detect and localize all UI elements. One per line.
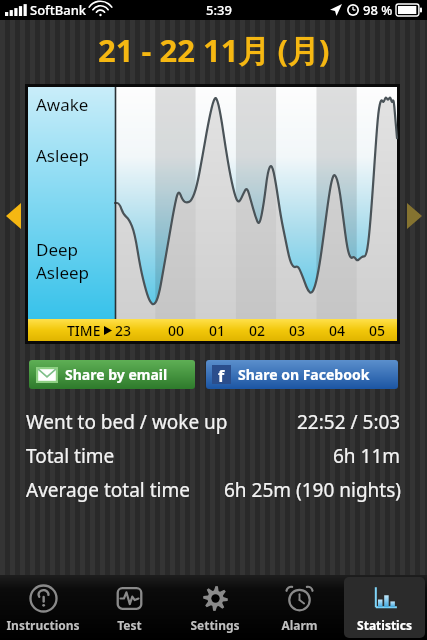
staticText: SoftBank — [30, 1, 87, 19]
staticText: 98 % — [363, 1, 393, 19]
staticText: f — [218, 365, 225, 384]
staticText: 6h 11m — [333, 443, 401, 469]
staticText: Test — [117, 617, 142, 633]
staticText: Instructions — [6, 617, 80, 633]
staticText: Average total time — [26, 477, 190, 503]
staticText: 6h 25m (190 nights) — [224, 477, 401, 503]
staticText: TIME — [67, 321, 101, 340]
staticText: 21 - 22 11月 (月) — [98, 29, 330, 71]
staticText: Awake — [36, 93, 89, 116]
staticText: 22:52 / 5:03 — [297, 409, 401, 435]
button[interactable]: Alarm — [259, 577, 340, 638]
staticText: Went to bed / woke up — [26, 409, 228, 435]
button[interactable]: Test — [88, 577, 170, 638]
staticText: Total time — [26, 443, 115, 469]
staticText: Alarm — [281, 617, 318, 633]
button[interactable]: Instructions — [2, 577, 84, 638]
staticText: 01 — [209, 321, 226, 340]
button[interactable]: Next night — [401, 80, 427, 352]
staticText: 00 — [168, 321, 185, 340]
staticText: Settings — [190, 617, 240, 633]
staticText: 02 — [249, 321, 266, 340]
staticText: 05 — [369, 321, 386, 340]
staticText: 04 — [329, 321, 346, 340]
staticText: Asleep — [36, 261, 90, 284]
button[interactable]: Previous night — [0, 80, 26, 352]
button[interactable]: f — [206, 360, 398, 389]
staticText: Share on Facebook — [238, 365, 370, 384]
staticText: 23 — [115, 321, 132, 340]
button[interactable]: Statistics — [344, 577, 425, 638]
staticText: 03 — [289, 321, 306, 340]
button[interactable]: Settings — [174, 577, 255, 638]
staticText: Deep — [36, 238, 79, 261]
button[interactable]: Share by email — [29, 360, 195, 389]
staticText: Statistics — [357, 617, 412, 633]
staticText: Share by email — [65, 365, 168, 384]
staticText: 5:39 — [206, 1, 232, 19]
staticText: Asleep — [36, 144, 90, 167]
